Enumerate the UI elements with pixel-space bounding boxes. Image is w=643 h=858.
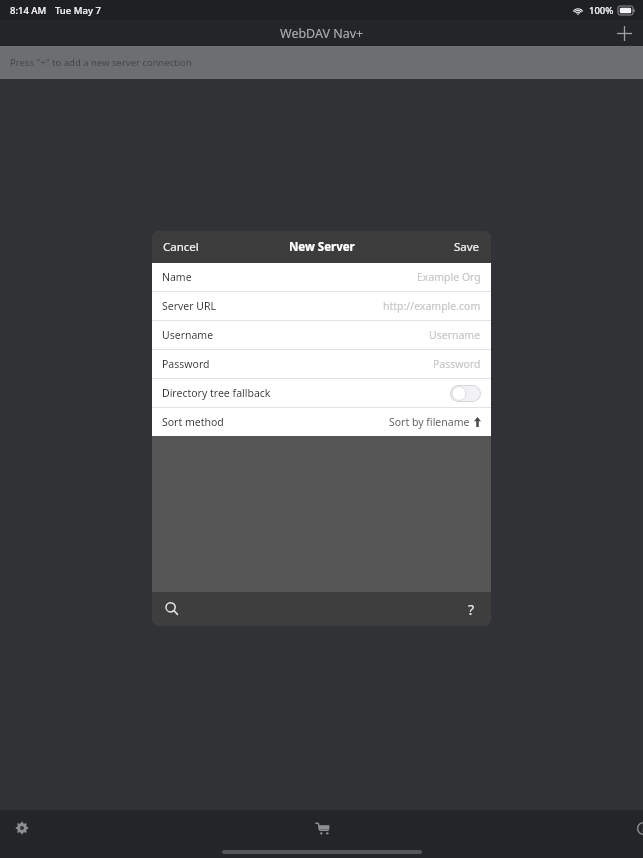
button[interactable]: Settings (0, 810, 44, 846)
staticText: Username (162, 328, 214, 342)
button[interactable]: Directory tree fallback toggle (450, 385, 481, 402)
button[interactable]: Directory tree fallback (152, 379, 491, 407)
button[interactable]: Store (300, 810, 344, 846)
staticText: Password (162, 357, 210, 371)
button[interactable]: Search (152, 592, 192, 626)
button[interactable]: Add server (605, 20, 643, 46)
button[interactable]: Press "+" to add a new server connection (0, 46, 643, 79)
staticText: Username (429, 328, 481, 342)
staticText: Name (162, 270, 192, 284)
staticText: ? (468, 600, 475, 619)
button[interactable]: Cancel (152, 233, 210, 261)
staticText: Server URL (162, 299, 217, 313)
staticText: Save (454, 239, 480, 255)
staticText: 100% (589, 4, 614, 17)
button[interactable]: Save (443, 233, 491, 261)
button[interactable]: Sort method (152, 408, 491, 436)
staticText: New Server (289, 239, 355, 255)
staticText: Press "+" to add a new server connection (10, 56, 192, 69)
staticText: Sort method (162, 415, 224, 429)
staticText: Tue May 7 (55, 4, 101, 17)
button[interactable]: Help (451, 592, 491, 626)
staticText: http://example.com (383, 299, 481, 313)
button[interactable]: Info (613, 810, 643, 846)
staticText: Cancel (163, 239, 199, 255)
staticText: 8:14 AM (10, 4, 47, 17)
staticText: WebDAV Nav+ (280, 25, 364, 42)
staticText: Directory tree fallback (162, 386, 271, 400)
staticText: Example Org (417, 270, 481, 284)
staticText: Sort by filename (389, 415, 470, 429)
staticText: Password (433, 357, 481, 371)
